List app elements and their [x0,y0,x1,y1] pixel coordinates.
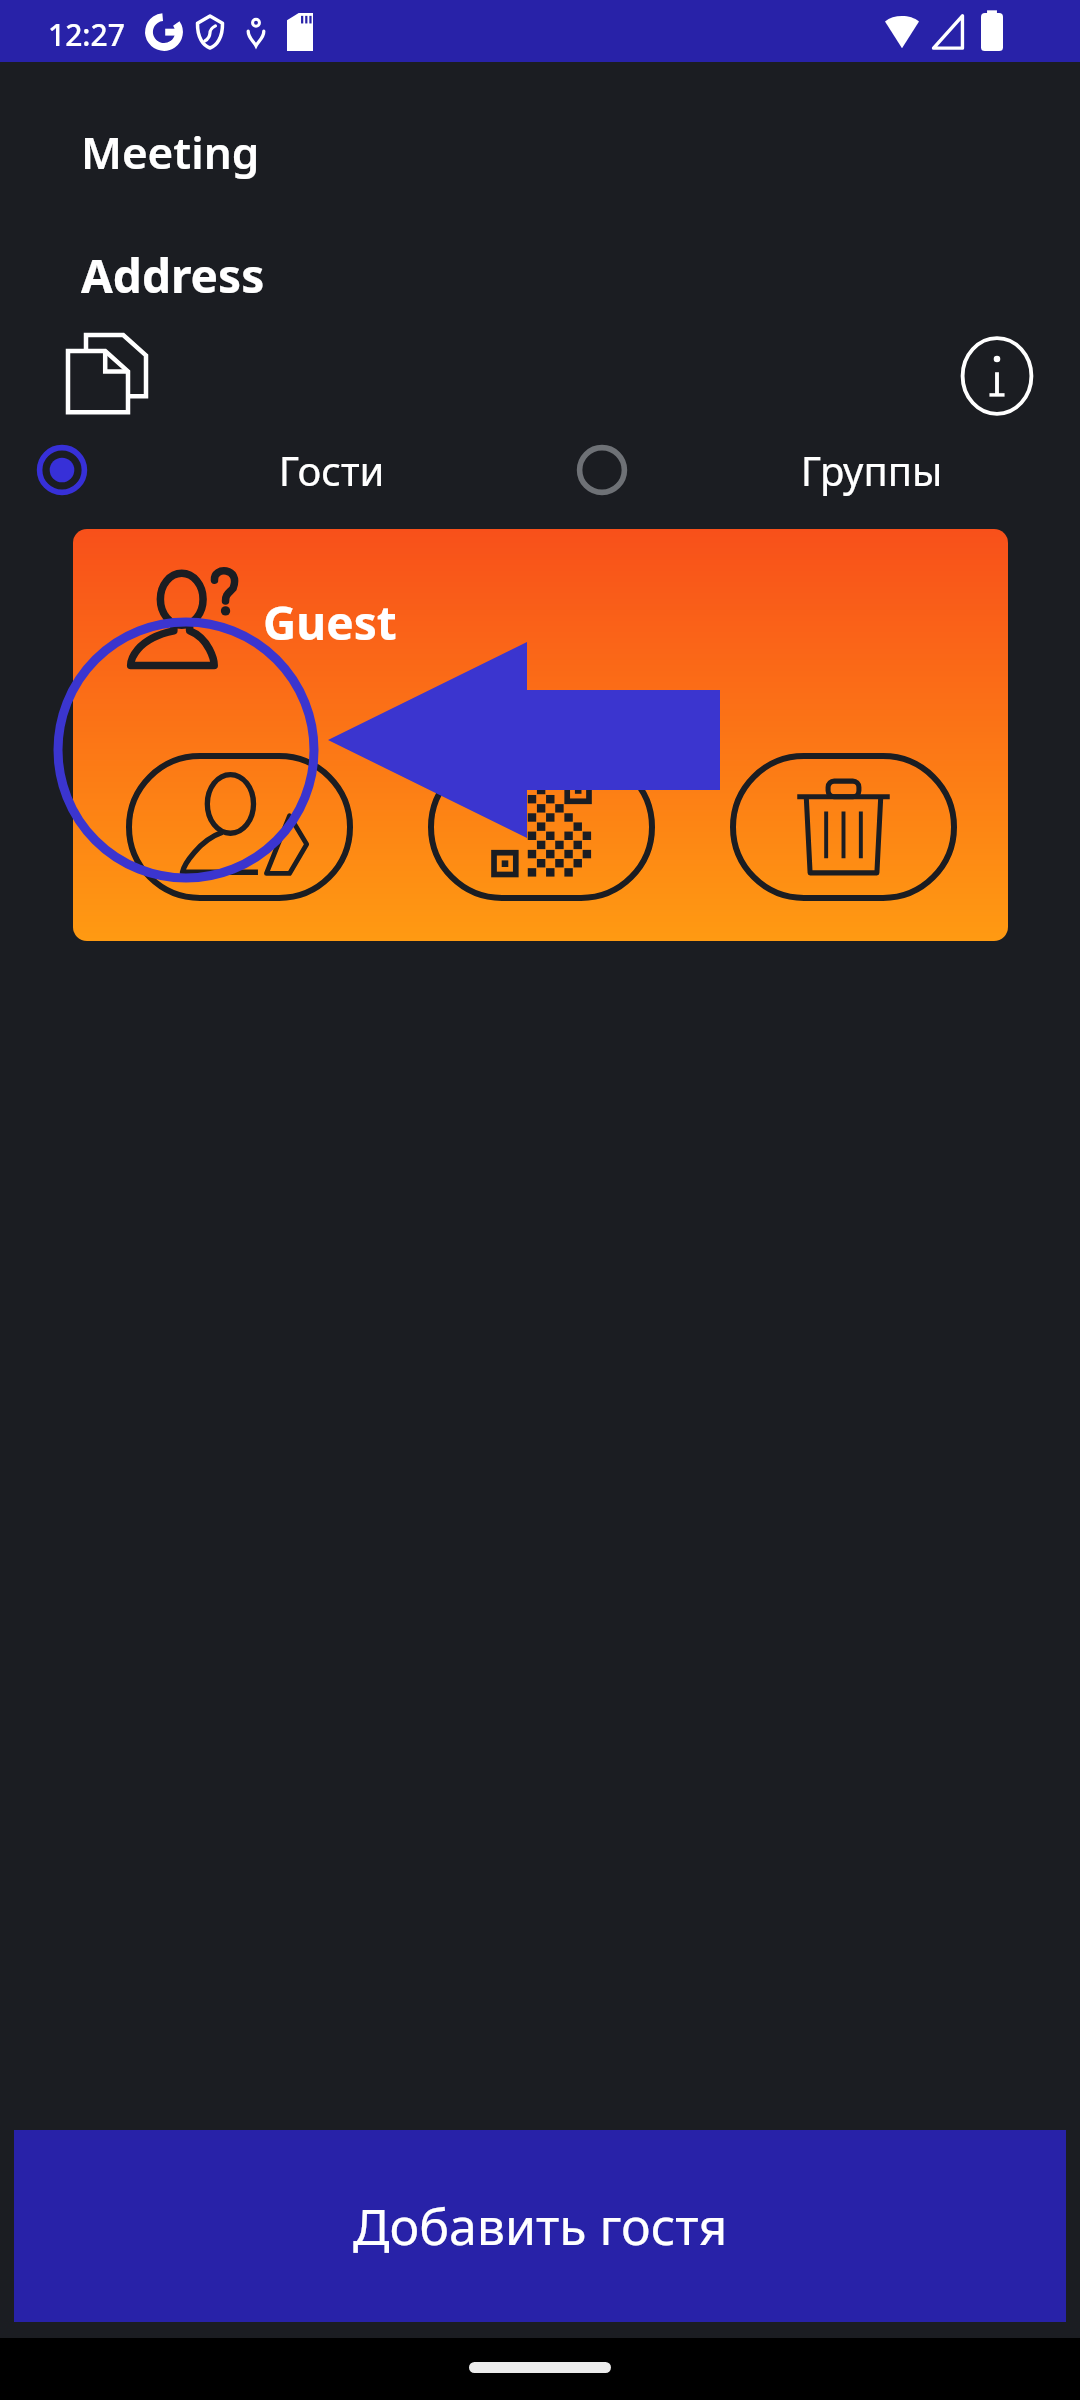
button[interactable]: Copy address [62,325,162,425]
button[interactable]: Information [954,333,1040,419]
staticText: Гости [123,443,540,497]
staticText: Добавить гостя [353,2192,728,2260]
button[interactable]: Guest [73,529,1008,941]
staticText: Guest [263,591,397,654]
button[interactable]: Добавить гостя [14,2130,1066,2322]
button[interactable]: Гости [0,427,540,513]
button[interactable]: Edit guest [126,753,353,901]
staticText: 12:27 [48,14,125,55]
staticText: Группы [663,443,1080,497]
staticText: Address [81,244,265,307]
button[interactable]: Show QR code [428,753,655,901]
button[interactable]: Группы [540,427,1080,513]
staticText: Meeting [81,122,260,182]
button[interactable]: Delete guest [730,753,957,901]
